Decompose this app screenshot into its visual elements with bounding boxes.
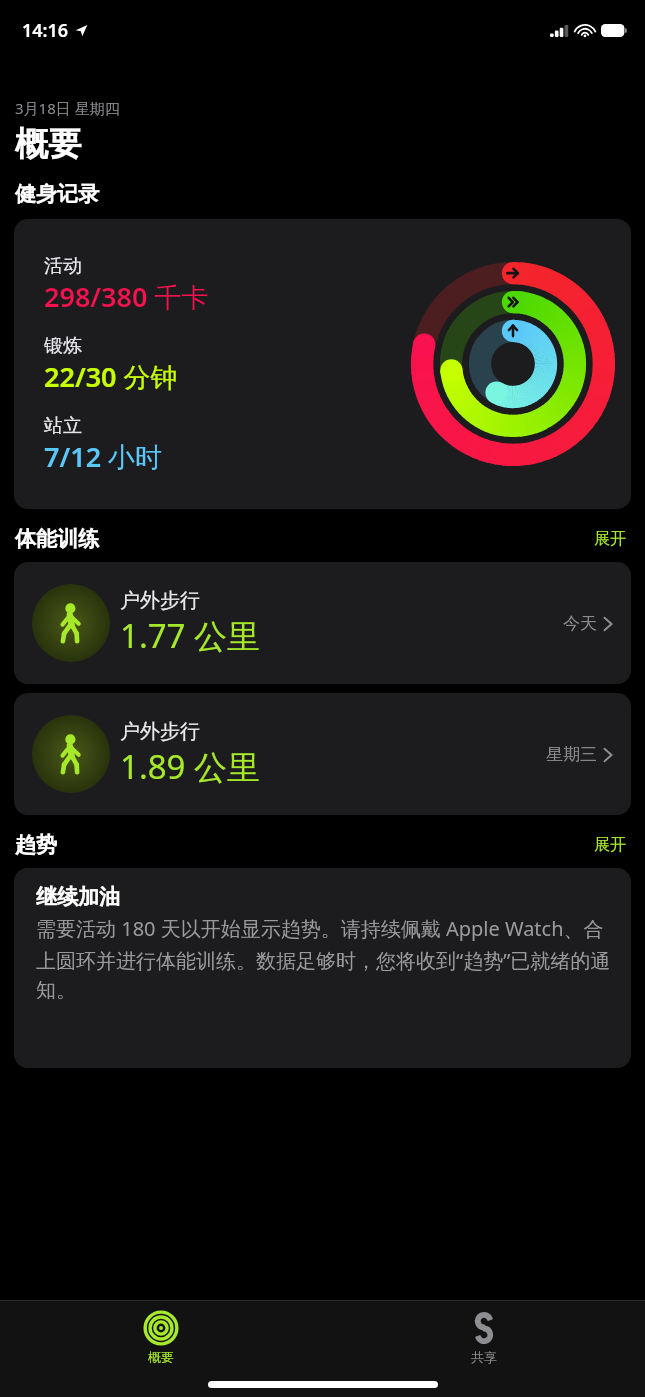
button[interactable]: 户外步行: [14, 562, 631, 684]
staticText: 7/12 小时: [44, 438, 163, 475]
staticText: 展开: [594, 835, 626, 855]
button[interactable]: 概要: [0, 1301, 322, 1397]
staticText: 站立: [44, 414, 82, 438]
staticText: 1.77 公里: [120, 613, 261, 658]
staticText: 3月18日 星期四: [15, 98, 120, 118]
staticText: 户外步行: [120, 588, 200, 613]
button[interactable]: 展开: [590, 525, 630, 553]
button[interactable]: 活动: [14, 219, 631, 509]
staticText: 22/30 分钟: [44, 358, 178, 395]
staticText: 星期三: [546, 744, 597, 765]
staticText: 概要: [148, 1349, 174, 1365]
staticText: 户外步行: [120, 719, 200, 744]
staticText: 继续加油: [36, 884, 120, 910]
staticText: 体能训练: [15, 526, 99, 552]
staticText: 活动: [44, 254, 82, 278]
button[interactable]: 户外步行: [14, 693, 631, 815]
button[interactable]: 继续加油: [14, 868, 631, 1068]
staticText: 14:16: [22, 18, 69, 43]
button[interactable]: 共享: [322, 1301, 645, 1397]
staticText: 趋势: [15, 832, 57, 858]
staticText: 展开: [594, 529, 626, 549]
staticText: 共享: [471, 1349, 497, 1365]
staticText: 今天: [563, 613, 597, 634]
staticText: 298/380 千卡: [44, 278, 209, 315]
staticText: 1.89 公里: [120, 744, 261, 789]
staticText: 健身记录: [15, 181, 99, 207]
staticText: 概要: [15, 123, 81, 165]
staticText: 锻炼: [44, 334, 82, 358]
button[interactable]: 展开: [590, 831, 630, 859]
staticText: 需要活动 180 天以开始显示趋势。请持续佩戴 Apple Watch、合上圆环…: [36, 915, 615, 1003]
